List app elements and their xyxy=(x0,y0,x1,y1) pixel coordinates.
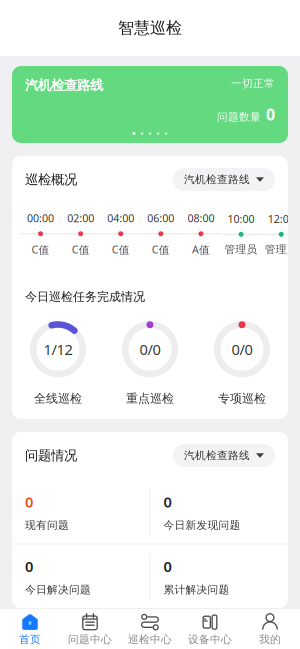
staticText: 巡检概况 xyxy=(25,171,77,188)
staticText: 0/0 xyxy=(231,339,252,359)
staticText: 一切正常 xyxy=(231,77,275,90)
staticText: 专项巡检 xyxy=(218,391,266,406)
staticText: 今日新发现问题 xyxy=(163,518,240,532)
staticText: 汽机检查路线 xyxy=(25,77,103,93)
staticText: 管理员 xyxy=(225,243,258,256)
staticText: 首页 xyxy=(19,633,41,646)
staticText: 00:00 xyxy=(27,211,54,225)
staticText: 汽机检查路线 xyxy=(184,449,250,462)
staticText: 问题情况 xyxy=(25,447,77,464)
staticText: A值 xyxy=(192,242,210,256)
staticText: 0/0 xyxy=(139,339,160,359)
staticText: 巡检中心 xyxy=(128,633,172,646)
staticText: 现有问题 xyxy=(25,518,69,532)
staticText: 0 xyxy=(163,492,171,512)
button[interactable]: 汽机检查路线 xyxy=(173,168,275,191)
staticText: 10:00 xyxy=(228,212,255,226)
staticText: 我的 xyxy=(259,633,281,646)
staticText: 0 xyxy=(266,104,275,125)
button[interactable]: 汽机检查路线 xyxy=(173,444,275,467)
staticText: 1/12 xyxy=(43,339,72,359)
staticText: 0 xyxy=(25,492,33,512)
button[interactable]: 我的 xyxy=(240,609,300,649)
staticText: 06:00 xyxy=(147,211,174,225)
button[interactable]: 汽机检查路线 xyxy=(12,66,288,143)
staticText: 设备中心 xyxy=(188,633,232,646)
staticText: 全线巡检 xyxy=(34,391,82,406)
button[interactable]: 设备中心 xyxy=(180,609,240,649)
staticText: 问题中心 xyxy=(68,633,112,646)
staticText: 累计解决问题 xyxy=(163,583,229,596)
staticText: 汽机检查路线 xyxy=(184,173,250,186)
staticText: 04:00 xyxy=(107,211,134,225)
button[interactable]: 问题中心 xyxy=(60,609,120,649)
staticText: 12:00 xyxy=(268,212,295,226)
staticText: 重点巡检 xyxy=(126,391,174,406)
staticText: C值 xyxy=(72,242,90,256)
staticText: 今日解决问题 xyxy=(25,583,91,596)
staticText: 今日巡检任务完成情况 xyxy=(25,289,145,304)
staticText: 0 xyxy=(25,557,33,576)
staticText: C值 xyxy=(32,242,50,256)
staticText: 02:00 xyxy=(67,211,94,225)
staticText: 0 xyxy=(163,557,171,576)
staticText: 管理员 xyxy=(265,243,298,256)
button[interactable]: 首页 xyxy=(0,609,60,649)
staticText: C值 xyxy=(152,242,170,256)
staticText: C值 xyxy=(112,242,130,256)
staticText: 问题数量 xyxy=(217,110,261,124)
button[interactable]: 巡检中心 xyxy=(120,609,180,649)
staticText: 智慧巡检 xyxy=(118,18,182,38)
staticText: 08:00 xyxy=(187,211,214,225)
